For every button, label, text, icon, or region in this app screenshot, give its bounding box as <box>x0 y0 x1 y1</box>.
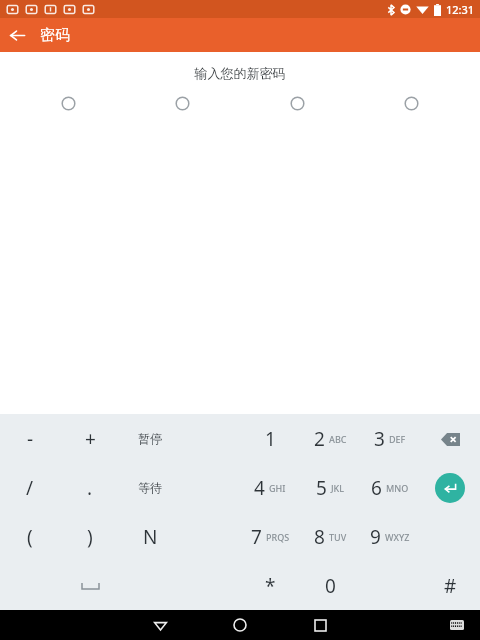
staticText: ) <box>87 524 93 550</box>
button[interactable]: 0 <box>300 561 360 610</box>
other: Space <box>73 574 107 598</box>
button[interactable]: N <box>120 512 180 561</box>
staticText: 12:31 <box>446 2 475 17</box>
staticText: # <box>444 573 457 599</box>
button[interactable]: 暂停 <box>120 414 180 463</box>
staticText: + <box>85 426 96 452</box>
button[interactable]: 4 <box>240 463 300 512</box>
button[interactable]: # <box>420 561 480 610</box>
staticText: 5 <box>316 475 327 501</box>
staticText: 1 <box>265 426 276 452</box>
staticText: 密码 <box>40 26 70 45</box>
button[interactable]: . <box>60 463 120 512</box>
staticText: 6 <box>371 475 382 501</box>
button[interactable]: 2 <box>300 414 360 463</box>
staticText: - <box>27 426 34 452</box>
staticText: ( <box>27 524 33 550</box>
button[interactable]: ) <box>60 512 120 561</box>
staticText: DEF <box>389 433 406 445</box>
staticText: * <box>265 573 276 599</box>
button[interactable]: Enter <box>420 463 480 512</box>
button[interactable]: 8 <box>300 512 360 561</box>
button[interactable]: * <box>240 561 300 610</box>
staticText: ABC <box>329 433 347 445</box>
staticText: N <box>143 524 158 550</box>
button[interactable]: 5 <box>300 463 360 512</box>
button[interactable]: Hide keyboard <box>145 610 175 640</box>
staticText: 4 <box>254 475 265 501</box>
button[interactable]: 6 <box>360 463 420 512</box>
staticText: 0 <box>325 573 336 599</box>
button[interactable]: Delete <box>420 414 480 463</box>
staticText: 9 <box>370 524 381 550</box>
staticText: MNO <box>386 482 409 494</box>
button[interactable]: Space <box>60 561 120 610</box>
button[interactable]: / <box>0 463 60 512</box>
staticText: 等待 <box>138 480 162 495</box>
staticText: PRQS <box>266 531 290 543</box>
staticText: / <box>26 475 34 501</box>
staticText: 3 <box>374 426 385 452</box>
staticText: GHI <box>269 482 286 494</box>
other: Delete <box>437 426 463 452</box>
staticText: 7 <box>251 524 262 550</box>
button[interactable]: Back <box>0 18 34 52</box>
button[interactable]: + <box>60 414 120 463</box>
button[interactable]: 等待 <box>120 463 180 512</box>
button[interactable]: Home <box>225 610 255 640</box>
staticText: . <box>87 475 93 501</box>
other: Enter <box>435 473 465 503</box>
staticText: 暂停 <box>138 431 162 446</box>
button[interactable]: 3 <box>360 414 420 463</box>
staticText: 2 <box>314 426 325 452</box>
button[interactable]: - <box>0 414 60 463</box>
staticText: TUV <box>329 531 347 543</box>
button[interactable]: 7 <box>240 512 300 561</box>
button[interactable]: 1 <box>240 414 300 463</box>
staticText: 8 <box>314 524 325 550</box>
staticText: 输入您的新密码 <box>0 65 480 81</box>
staticText: JKL <box>331 482 345 494</box>
staticText: WXYZ <box>385 531 410 543</box>
button[interactable]: Switch keyboard <box>444 612 470 638</box>
button[interactable]: Recent apps <box>305 610 335 640</box>
button[interactable]: 9 <box>360 512 420 561</box>
button[interactable]: ( <box>0 512 60 561</box>
